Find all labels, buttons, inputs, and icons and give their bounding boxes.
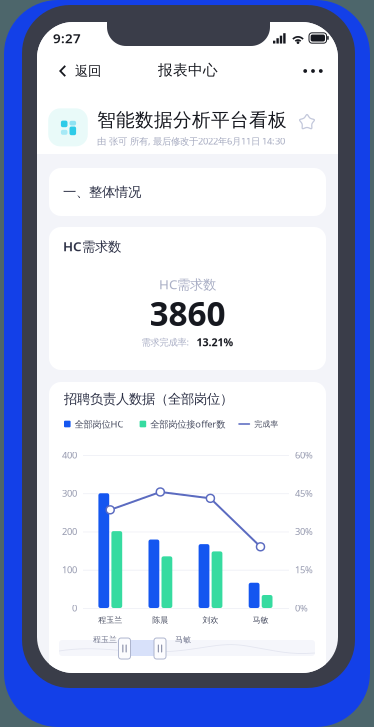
staticText: 60% (295, 449, 313, 461)
staticText: 一、整体情况 (63, 184, 141, 200)
staticText: 完成率 (254, 419, 278, 429)
button[interactable]: 返回 (51, 51, 119, 91)
staticText: 返回 (75, 63, 101, 79)
staticText: 400 (62, 449, 77, 461)
staticText: 100 (62, 564, 77, 576)
staticText: 需求完成率: (141, 336, 189, 348)
staticText: 程玉兰 (98, 615, 122, 625)
staticText: 由 张可 所有, 最后修改于2022年6月11日 14:30 (97, 135, 285, 147)
staticText: 3860 (149, 291, 225, 335)
staticText: 15% (295, 564, 313, 576)
button[interactable]: Favorite (294, 109, 320, 135)
staticText: 全部岗位接offer数 (150, 418, 225, 430)
staticText: HC需求数 (63, 237, 121, 255)
staticText: 智能数据分析平台看板 (97, 108, 287, 131)
staticText: 刘欢 (202, 615, 218, 625)
staticText: 程玉兰 (93, 635, 117, 644)
staticText: 45% (295, 487, 313, 499)
staticText: 招聘负责人数据（全部岗位） (64, 391, 233, 407)
button[interactable]: More options (292, 51, 334, 91)
staticText: 300 (62, 487, 77, 499)
staticText: 9:27 (53, 29, 81, 47)
staticText: 13.21% (196, 335, 233, 349)
staticText: HC需求数 (159, 275, 216, 293)
staticText: 全部岗位HC (75, 418, 124, 430)
staticText: 马敏 (175, 635, 191, 644)
staticText: 报表中心 (158, 61, 218, 79)
staticText: 30% (295, 525, 313, 538)
staticText: 马敏 (252, 615, 268, 625)
staticText: 陈晨 (152, 615, 168, 625)
staticText: 0 (72, 602, 77, 614)
staticText: 0% (295, 602, 308, 614)
staticText: 200 (62, 525, 77, 538)
